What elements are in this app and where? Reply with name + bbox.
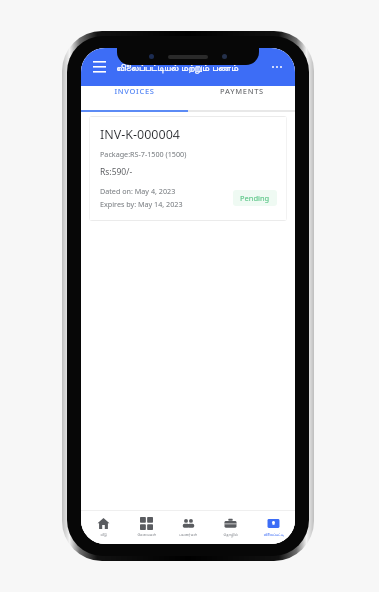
button[interactable]: INV-K-000004 — [89, 116, 287, 221]
button[interactable]: Menu — [90, 58, 108, 76]
button[interactable]: More options — [268, 58, 286, 76]
staticText: Dated on: May 4, 2023 — [100, 186, 176, 196]
staticText: Expires by: May 14, 2023 — [100, 199, 183, 209]
staticText: Package:RS-7-1500 (1500) — [100, 149, 187, 159]
button[interactable]: INVOICES — [81, 86, 188, 96]
staticText: பயனர்கள் — [179, 533, 197, 537]
button[interactable]: Business — [210, 510, 250, 544]
button[interactable]: Home — [83, 510, 123, 544]
staticText: வீடு — [100, 533, 107, 537]
staticText: விலைப்பட்டியல் மற்றும் பணம் — [116, 60, 239, 74]
staticText: INV-K-000004 — [100, 126, 180, 143]
staticText: Pending — [240, 193, 270, 203]
staticText: INVOICES — [114, 86, 155, 96]
staticText: சேவைகள் — [137, 533, 156, 537]
button[interactable]: Services — [126, 510, 166, 544]
button[interactable]: PAYMENTS — [188, 86, 295, 96]
staticText: தொழில் — [223, 533, 238, 537]
button[interactable]: Users — [168, 510, 208, 544]
button[interactable]: Invoices — [253, 510, 293, 544]
staticText: PAYMENTS — [220, 86, 264, 96]
staticText: விலைப்பட்டி — [263, 533, 284, 537]
staticText: Rs:590/- — [100, 166, 133, 178]
